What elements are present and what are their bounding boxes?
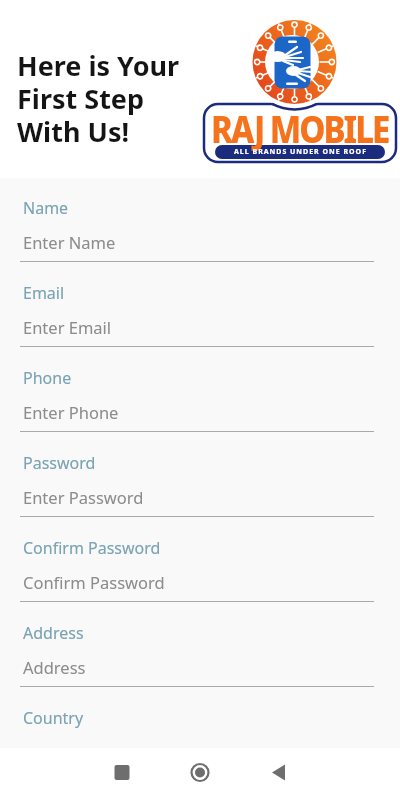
button[interactable] [267,748,400,800]
staticText: Confirm Password [23,537,161,559]
button[interactable]: Phone [0,367,400,452]
staticText: Enter Name [23,231,116,253]
staticText: Address [23,622,84,644]
staticText: Name [23,197,69,219]
staticText: Here is Your First Step With Us! [17,47,180,150]
button[interactable]: Email [0,282,400,367]
staticText: Enter Email [23,316,112,338]
button[interactable] [134,748,267,800]
button[interactable]: Name [0,197,400,282]
staticText: Address [23,656,86,678]
button[interactable]: Confirm Password [0,537,400,622]
staticText: Enter Phone [23,401,119,423]
staticText: Confirm Password [23,571,165,593]
staticText: Password [23,452,96,474]
button[interactable] [0,748,134,800]
staticText: ALL BRANDS UNDER ONE ROOF [234,147,367,157]
button[interactable]: Password [0,452,400,537]
button[interactable]: Address [0,622,400,707]
staticText: Phone [23,367,72,389]
staticText: Country [23,707,84,729]
staticText: Enter Password [23,486,144,508]
staticText: Email [23,282,65,304]
staticText: RAJ MOBILE [211,103,389,151]
